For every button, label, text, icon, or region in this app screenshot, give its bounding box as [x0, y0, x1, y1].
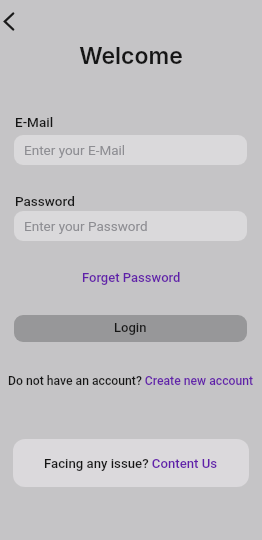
button[interactable]: Login — [14, 315, 247, 342]
button[interactable]: Enter your E-Mail — [14, 135, 247, 165]
button[interactable]: Forget Password — [82, 270, 181, 285]
button[interactable]: Facing any issue? Content Us — [13, 439, 249, 487]
button[interactable]: Enter your Password — [14, 211, 247, 241]
staticText: Do not have an account? Create new accou… — [8, 374, 254, 388]
staticText: Facing any issue? Content Us — [44, 456, 218, 471]
staticText: Login — [114, 320, 147, 335]
staticText: E-Mail — [15, 114, 54, 130]
staticText: Welcome — [0, 42, 262, 70]
staticText: Enter your Password — [24, 218, 148, 234]
staticText: Enter your E-Mail — [24, 142, 126, 158]
button[interactable]: Do not have an account? Create new accou… — [8, 374, 254, 388]
staticText: Password — [15, 193, 75, 209]
button[interactable] — [0, 6, 32, 38]
staticText: Forget Password — [82, 270, 181, 285]
